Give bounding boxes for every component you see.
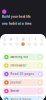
button[interactable]: Drink water [2, 62, 43, 69]
button[interactable]: Stretch [2, 87, 43, 95]
button[interactable]: Journal [2, 79, 43, 86]
staticText: Read 20 pages [10, 72, 33, 76]
staticText: Stretch [10, 89, 19, 93]
staticText: W [22, 38, 24, 41]
button[interactable]: Sleep 8 hours [2, 96, 43, 100]
staticText: S [41, 38, 42, 41]
button[interactable]: Morning run [2, 53, 43, 61]
staticText: M [10, 38, 12, 41]
staticText: one habit at a time [2, 22, 32, 25]
staticText: F [35, 38, 36, 41]
staticText: T [29, 38, 30, 41]
staticText: Morning run [10, 55, 28, 59]
staticText: S [4, 38, 5, 41]
staticText: Sleep 8 hours [10, 98, 30, 100]
staticText: Journal [10, 81, 21, 84]
button[interactable]: Read 20 pages [2, 70, 43, 78]
staticText: Drink water [10, 64, 26, 67]
staticText: Build your best life [2, 15, 31, 18]
staticText: T [16, 38, 17, 41]
